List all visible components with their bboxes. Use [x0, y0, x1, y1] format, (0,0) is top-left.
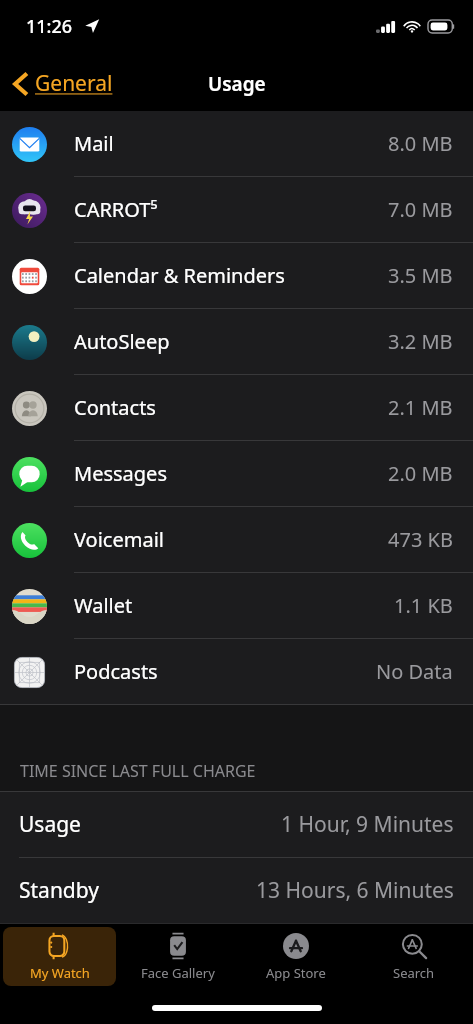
- button[interactable]: Usage: [0, 792, 473, 857]
- button[interactable]: Search: [358, 927, 470, 986]
- staticText: No Data: [376, 658, 453, 685]
- staticText: Standby: [19, 876, 99, 905]
- staticText: Mail: [74, 130, 114, 157]
- staticText: 1.1 KB: [394, 592, 453, 619]
- button[interactable]: General: [8, 63, 119, 104]
- button[interactable]: AutoSleep: [0, 309, 473, 374]
- staticText: 7.0 MB: [388, 196, 453, 223]
- staticText: 13 Hours, 6 Minutes: [256, 876, 454, 905]
- button[interactable]: Voicemail: [0, 507, 473, 572]
- staticText: General: [35, 69, 113, 98]
- staticText: Calendar & Reminders: [74, 262, 285, 289]
- staticText: Voicemail: [74, 526, 164, 553]
- staticText: 11:26: [26, 14, 73, 39]
- other: My Watch: [48, 932, 72, 960]
- staticText: 2.1 MB: [388, 394, 453, 421]
- staticText: Messages: [74, 460, 167, 487]
- staticText: 2.0 MB: [388, 460, 453, 487]
- staticText: 3.5 MB: [388, 262, 453, 289]
- button[interactable]: Podcasts: [0, 639, 473, 704]
- staticText: My Watch: [30, 964, 90, 982]
- button[interactable]: Calendar & Reminders: [0, 243, 473, 308]
- button[interactable]: Mail: [0, 111, 473, 176]
- other: App Store: [283, 933, 309, 959]
- staticText: Contacts: [74, 394, 156, 421]
- button[interactable]: Wallet: [0, 573, 473, 638]
- staticText: 3.2 MB: [388, 328, 453, 355]
- button[interactable]: App Store: [240, 927, 352, 986]
- button[interactable]: Contacts: [0, 375, 473, 440]
- other: Search: [401, 933, 428, 960]
- staticText: Usage: [208, 71, 266, 97]
- staticText: 473 KB: [388, 526, 453, 553]
- staticText: Usage: [19, 810, 81, 839]
- staticText: Podcasts: [74, 658, 158, 685]
- button[interactable]: Face Gallery: [122, 927, 234, 986]
- staticText: App Store: [266, 964, 326, 982]
- staticText: TIME SINCE LAST FULL CHARGE: [20, 760, 256, 782]
- staticText: CARROT⁵: [74, 196, 158, 223]
- button[interactable]: Standby: [0, 858, 473, 923]
- staticText: AutoSleep: [74, 328, 170, 355]
- staticText: Search: [393, 964, 435, 982]
- staticText: Wallet: [74, 592, 133, 619]
- button[interactable]: My Watch: [3, 927, 116, 986]
- staticText: 8.0 MB: [388, 130, 453, 157]
- button[interactable]: Messages: [0, 441, 473, 506]
- staticText: Face Gallery: [141, 964, 215, 982]
- other: Face Gallery: [166, 932, 190, 960]
- staticText: 1 Hour, 9 Minutes: [281, 810, 454, 839]
- button[interactable]: CARROT⁵: [0, 177, 473, 242]
